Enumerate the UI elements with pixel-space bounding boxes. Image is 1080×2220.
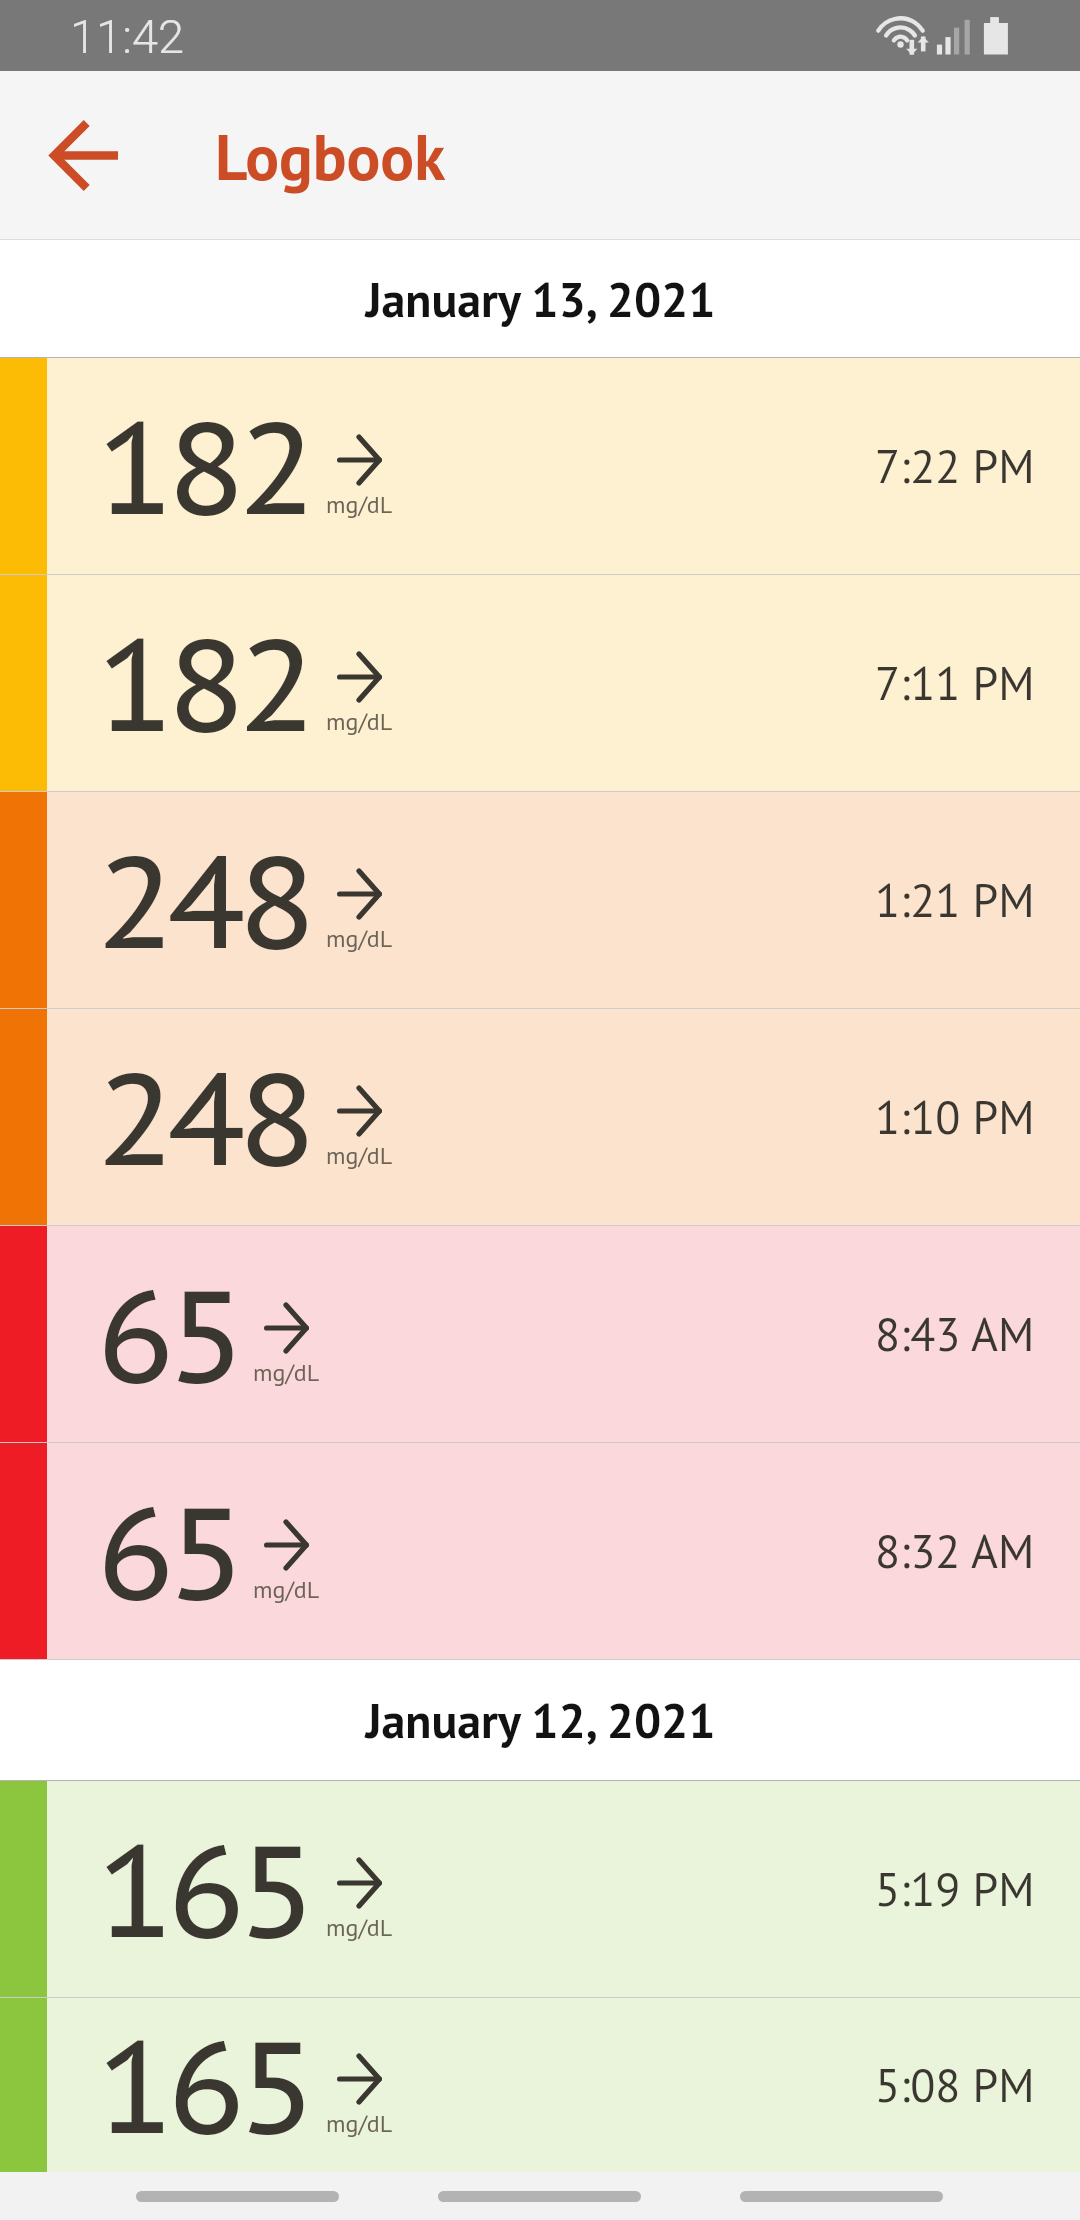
staticText: January 13, 2021 [365,268,716,330]
button[interactable]: Home [438,2191,641,2202]
button[interactable]: Back [740,2191,943,2202]
button[interactable]: Recents [136,2191,339,2202]
staticText: mg/dL [326,1912,393,1943]
staticText: mg/dL [326,706,393,737]
staticText: 1:21 PM [875,870,1035,930]
staticText: mg/dL [326,489,393,520]
staticText: 5:08 PM [875,2055,1035,2115]
staticText: 8:32 AM [875,1521,1035,1581]
button[interactable]: 182 [0,575,1080,791]
staticText: 8:43 AM [875,1304,1035,1364]
staticText: 65 [97,1467,239,1635]
staticText: 165 [97,1805,310,1973]
button[interactable]: 65 [0,1226,1080,1442]
staticText: mg/dL [326,1140,393,1171]
staticText: Logbook [215,116,446,198]
staticText: 248 [97,1033,310,1201]
button[interactable]: 165 [0,1781,1080,1997]
staticText: 65 [97,1250,239,1418]
button[interactable]: 65 [0,1443,1080,1659]
button[interactable]: 248 [0,792,1080,1008]
staticText: mg/dL [253,1357,320,1388]
staticText: 5:19 PM [875,1859,1035,1919]
staticText: 7:22 PM [875,436,1035,496]
staticText: January 12, 2021 [365,1689,716,1751]
staticText: 11:42 [70,9,185,64]
staticText: 1:10 PM [875,1087,1035,1147]
button[interactable]: 248 [0,1009,1080,1225]
staticText: 182 [97,599,310,767]
staticText: 165 [97,2001,310,2169]
button[interactable]: 165 [0,1998,1080,2172]
button[interactable]: 182 [0,358,1080,574]
staticText: mg/dL [326,923,393,954]
staticText: 182 [97,382,310,550]
staticText: mg/dL [253,1574,320,1605]
staticText: 7:11 PM [875,653,1035,713]
button[interactable]: Back [14,85,154,225]
staticText: mg/dL [326,2108,393,2139]
staticText: 248 [97,816,310,984]
